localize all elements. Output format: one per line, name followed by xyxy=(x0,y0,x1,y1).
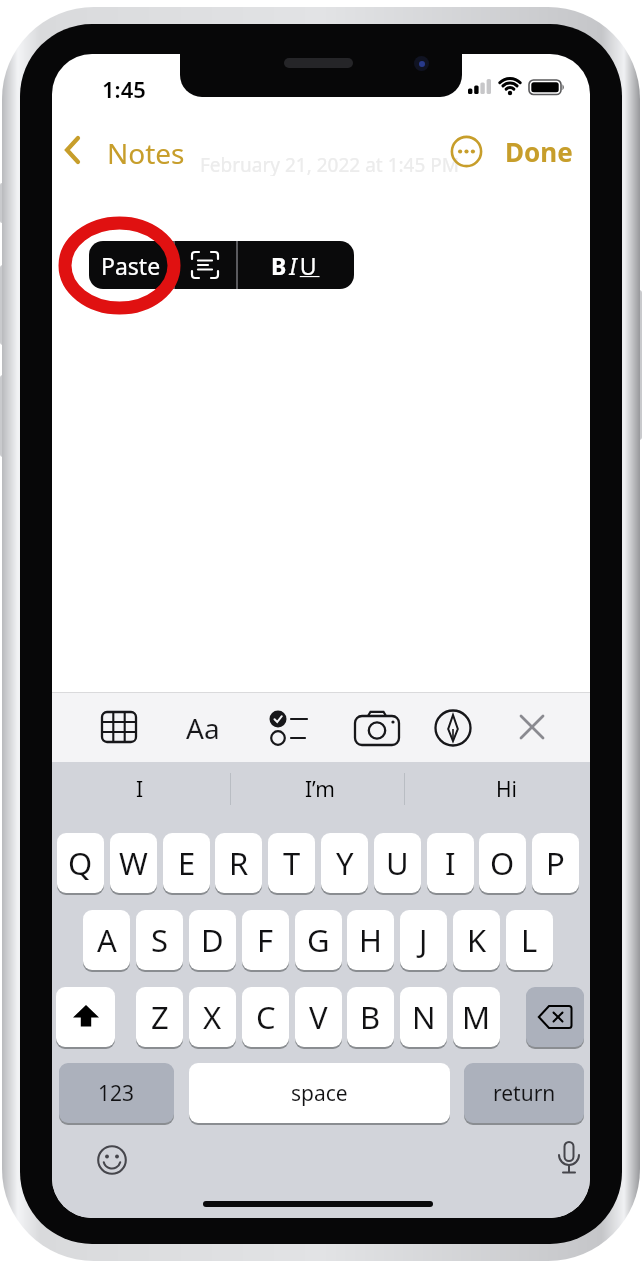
staticText: W xyxy=(119,842,148,884)
button[interactable]: S xyxy=(136,910,183,970)
button[interactable]: W xyxy=(110,833,157,893)
button[interactable]: P xyxy=(532,833,579,893)
staticText: C xyxy=(256,996,276,1038)
staticText: Hi xyxy=(496,775,517,804)
staticText: J xyxy=(419,919,428,961)
staticText: A xyxy=(97,919,117,961)
staticText: L xyxy=(521,919,538,961)
staticText: T xyxy=(283,842,301,884)
button[interactable]: Paste xyxy=(89,241,173,289)
button[interactable]: M xyxy=(453,987,500,1047)
button[interactable]: J xyxy=(400,910,447,970)
button[interactable] xyxy=(433,708,473,748)
button[interactable] xyxy=(450,135,483,168)
button[interactable]: Z xyxy=(136,987,183,1047)
button[interactable]: A xyxy=(83,910,130,970)
button[interactable]: return xyxy=(464,1063,584,1123)
button[interactable] xyxy=(553,1140,585,1180)
button[interactable]: F xyxy=(242,910,289,970)
staticText: D xyxy=(201,919,224,961)
button[interactable]: Y xyxy=(321,833,368,893)
button[interactable]: K xyxy=(453,910,500,970)
button[interactable]: T xyxy=(268,833,315,893)
staticText: M xyxy=(462,996,491,1038)
staticText: K xyxy=(467,919,487,961)
button[interactable]: Notes xyxy=(88,134,204,166)
staticText: G xyxy=(307,919,330,961)
staticText: E xyxy=(178,842,196,884)
staticText: Notes xyxy=(107,134,185,166)
staticText: Z xyxy=(151,996,169,1038)
staticText: I xyxy=(445,842,456,884)
button[interactable]: R xyxy=(215,833,262,893)
staticText: I xyxy=(136,775,144,804)
button[interactable] xyxy=(101,709,137,745)
staticText: B xyxy=(360,996,381,1038)
button[interactable]: B xyxy=(347,987,394,1047)
button[interactable] xyxy=(173,241,236,289)
staticText: F xyxy=(257,919,274,961)
staticText: V xyxy=(309,996,328,1038)
button[interactable] xyxy=(526,987,584,1047)
staticText: R xyxy=(229,842,249,884)
button[interactable]: L xyxy=(506,910,553,970)
staticText: N xyxy=(412,996,436,1038)
staticText: 123 xyxy=(98,1079,135,1108)
staticText: H xyxy=(359,919,382,961)
staticText: return xyxy=(493,1079,556,1108)
button[interactable]: Hi xyxy=(456,770,556,808)
button[interactable] xyxy=(517,712,547,742)
button[interactable]: BIU xyxy=(237,241,354,289)
button[interactable]: D xyxy=(189,910,236,970)
button[interactable]: O xyxy=(479,833,526,893)
button[interactable]: E xyxy=(163,833,210,893)
button[interactable]: I’m xyxy=(270,770,370,808)
button[interactable] xyxy=(56,987,115,1047)
staticText: I’m xyxy=(305,775,335,804)
staticText: X xyxy=(203,996,222,1038)
button[interactable]: X xyxy=(189,987,236,1047)
button[interactable] xyxy=(267,708,311,748)
button[interactable] xyxy=(96,1144,128,1176)
button[interactable]: space xyxy=(189,1063,450,1123)
button[interactable]: 123 xyxy=(59,1063,174,1123)
button[interactable]: Done xyxy=(502,134,576,166)
button[interactable] xyxy=(64,136,82,164)
button[interactable]: N xyxy=(400,987,447,1047)
staticText: space xyxy=(291,1079,348,1108)
button[interactable]: U xyxy=(374,833,421,893)
button[interactable]: G xyxy=(295,910,342,970)
button[interactable]: H xyxy=(347,910,394,970)
staticText: O xyxy=(490,842,515,884)
button[interactable] xyxy=(355,710,399,746)
button[interactable]: Aa xyxy=(178,709,228,747)
button[interactable]: I xyxy=(90,770,190,808)
staticText: 1:45 xyxy=(102,74,146,102)
staticText: Paste xyxy=(101,250,161,281)
staticText: S xyxy=(151,919,169,961)
staticText: Y xyxy=(336,842,354,884)
staticText: U xyxy=(386,842,409,884)
staticText: Done xyxy=(505,134,573,166)
staticText: Q xyxy=(68,842,93,884)
button[interactable]: Q xyxy=(57,833,104,893)
staticText: Aa xyxy=(186,709,220,747)
staticText: BIU xyxy=(271,250,320,281)
button[interactable]: I xyxy=(427,833,474,893)
button[interactable]: C xyxy=(242,987,289,1047)
staticText: February 21, 2022 at 1:45 PM xyxy=(200,152,459,176)
button[interactable]: V xyxy=(295,987,342,1047)
staticText: P xyxy=(546,842,565,884)
